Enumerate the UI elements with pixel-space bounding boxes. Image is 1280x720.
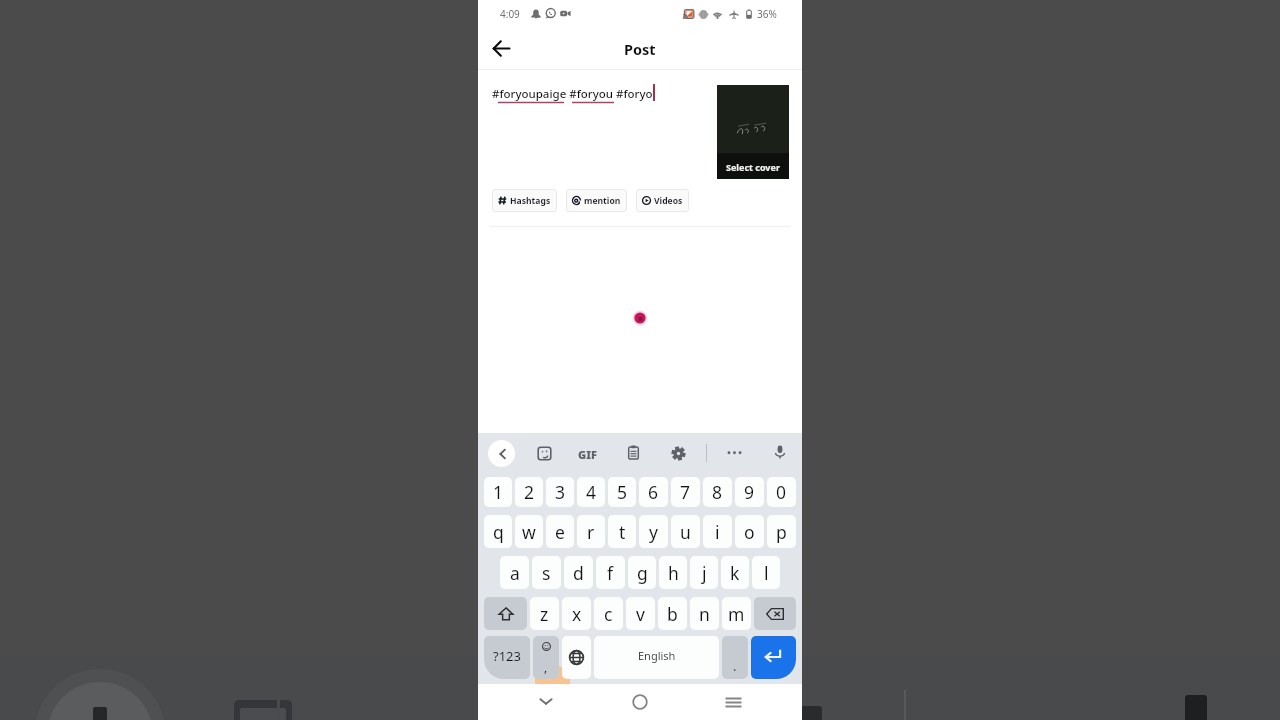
staticText: 7 <box>680 480 691 504</box>
button[interactable]: v <box>626 597 655 630</box>
staticText: English <box>638 648 676 663</box>
button[interactable]: GIF <box>578 447 597 462</box>
staticText: ?123 <box>493 647 521 665</box>
button[interactable]: 8 <box>703 477 732 507</box>
button[interactable]: s <box>532 556 561 589</box>
button[interactable]: 2 <box>515 477 543 507</box>
button[interactable]: Videos <box>636 189 689 212</box>
button[interactable]: 3 <box>546 477 574 507</box>
button[interactable]: d <box>564 556 593 589</box>
staticText: i <box>715 520 720 544</box>
button[interactable]: Voice input <box>773 445 787 459</box>
staticText: mention <box>584 195 621 207</box>
staticText: 6 <box>648 480 659 504</box>
staticText: c <box>604 602 613 626</box>
button[interactable]: i <box>703 515 732 548</box>
button[interactable]: Clipboard <box>626 445 641 460</box>
button[interactable]: Stickers <box>537 446 552 461</box>
button[interactable]: w <box>515 515 543 548</box>
button[interactable]: q <box>484 515 512 548</box>
staticText: Post <box>624 39 656 59</box>
staticText: Select cover <box>726 161 780 173</box>
staticText: 5 <box>617 480 628 504</box>
button[interactable]: Enter <box>751 636 796 679</box>
staticText: p <box>776 520 787 544</box>
button[interactable]: r <box>577 515 605 548</box>
staticText: . <box>733 657 737 675</box>
button[interactable]: l <box>752 556 780 589</box>
button[interactable]: mention <box>566 189 627 212</box>
staticText: s <box>542 561 551 585</box>
staticText: 1 <box>493 480 504 504</box>
staticText: x <box>572 602 582 626</box>
button[interactable]: u <box>671 515 700 548</box>
button[interactable]: 6 <box>639 477 668 507</box>
button[interactable]: Backspace <box>754 597 796 630</box>
staticText: 3 <box>555 480 566 504</box>
button[interactable]: b <box>658 597 687 630</box>
button[interactable]: c <box>594 597 623 630</box>
staticText: v <box>636 602 645 626</box>
staticText: n <box>699 602 710 626</box>
button[interactable]: h <box>659 556 687 589</box>
staticText: 4 <box>586 480 597 504</box>
button[interactable]: 4 <box>577 477 605 507</box>
button[interactable]: p <box>767 515 796 548</box>
staticText: m <box>728 602 745 626</box>
button[interactable]: Collapse toolbar <box>488 440 515 467</box>
staticText: j <box>702 561 707 585</box>
staticText: e <box>555 520 565 544</box>
button[interactable]: . <box>722 636 748 679</box>
staticText: f <box>607 561 614 585</box>
staticText: 0 <box>776 480 787 504</box>
staticText: o <box>744 520 755 544</box>
staticText: l <box>764 561 769 585</box>
button[interactable]: g <box>628 556 656 589</box>
staticText: g <box>637 561 648 585</box>
button[interactable]: ?123 <box>484 636 530 679</box>
button[interactable]: English <box>594 636 719 679</box>
staticText: 36% <box>757 7 777 21</box>
staticText: Videos <box>654 195 683 207</box>
staticText: 8 <box>712 480 723 504</box>
button[interactable]: 7 <box>671 477 700 507</box>
button[interactable]: e <box>546 515 574 548</box>
button[interactable]: n <box>690 597 719 630</box>
button[interactable]: Change language <box>562 636 591 679</box>
staticText: z <box>540 602 549 626</box>
staticText: w <box>522 520 536 544</box>
button[interactable]: 9 <box>735 477 764 507</box>
button[interactable]: Shift <box>484 597 527 630</box>
button[interactable]: a <box>500 556 529 589</box>
staticText: #foryoupaige #foryou #foryo <box>492 86 653 102</box>
button[interactable]: o <box>735 515 764 548</box>
button[interactable]: Settings <box>671 446 686 461</box>
button[interactable]: 5 <box>608 477 636 507</box>
button[interactable]: z <box>530 597 559 630</box>
button[interactable]: k <box>721 556 749 589</box>
staticText: y <box>649 520 658 544</box>
staticText: 9 <box>744 480 755 504</box>
button[interactable]: 1 <box>484 477 512 507</box>
button[interactable]: Back <box>486 34 515 63</box>
staticText: b <box>667 602 678 626</box>
staticText: q <box>493 520 504 544</box>
button[interactable]: t <box>608 515 636 548</box>
staticText: d <box>573 561 584 585</box>
button[interactable]: f <box>596 556 625 589</box>
button[interactable]: x <box>562 597 591 630</box>
button[interactable]: Recent apps <box>717 686 749 718</box>
button[interactable]: Home <box>624 686 656 718</box>
staticText: r <box>587 520 595 544</box>
staticText: h <box>668 561 679 585</box>
button[interactable]: Select cover <box>717 85 789 179</box>
button[interactable]: y <box>639 515 668 548</box>
button[interactable]: Emoji and comma <box>533 636 559 679</box>
button[interactable]: m <box>722 597 751 630</box>
button[interactable]: Hide keyboard <box>530 686 562 718</box>
button[interactable]: More options <box>727 450 742 465</box>
button[interactable]: j <box>690 556 718 589</box>
button[interactable]: 0 <box>767 477 796 507</box>
staticText: Hashtags <box>510 195 551 207</box>
button[interactable]: Hashtags <box>492 189 557 212</box>
